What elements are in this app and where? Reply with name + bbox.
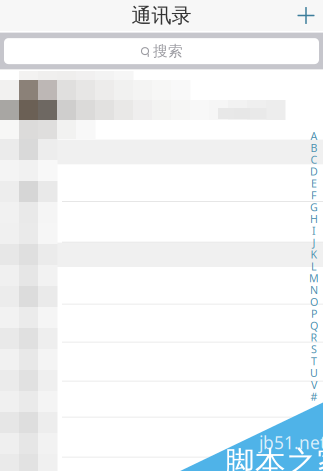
button[interactable]: Contact xyxy=(0,267,323,305)
button[interactable]: Contact xyxy=(0,418,323,458)
staticText: Q xyxy=(310,318,318,333)
staticText: 通讯录 xyxy=(131,3,191,28)
staticText: F xyxy=(311,188,317,202)
staticText: O xyxy=(310,295,318,309)
staticText: U xyxy=(310,366,318,380)
staticText: T xyxy=(311,354,317,368)
staticText: D xyxy=(310,164,318,179)
staticText: H xyxy=(310,212,318,226)
staticText: 搜索 xyxy=(153,42,183,60)
button[interactable]: Alphabet index xyxy=(308,130,320,403)
staticText: # xyxy=(310,389,317,404)
staticText: L xyxy=(311,259,317,273)
staticText: R xyxy=(310,330,317,344)
staticText: M xyxy=(309,271,319,285)
staticText: J xyxy=(312,235,315,250)
staticText: B xyxy=(310,141,317,155)
button[interactable]: Search xyxy=(0,38,323,64)
staticText: G xyxy=(310,200,318,214)
button[interactable]: Contact xyxy=(0,202,323,243)
staticText: C xyxy=(310,152,317,167)
staticText: K xyxy=(310,247,317,261)
staticText: I xyxy=(312,224,316,238)
staticText: N xyxy=(310,283,318,297)
staticText: V xyxy=(311,378,317,392)
button[interactable]: Add contact xyxy=(289,0,323,31)
button[interactable]: Contact xyxy=(0,165,323,202)
button[interactable]: Contact xyxy=(0,382,323,418)
staticText: E xyxy=(311,176,317,190)
button[interactable]: Contact xyxy=(0,343,323,382)
staticText: P xyxy=(311,307,317,321)
staticText: jb51.net xyxy=(259,431,323,454)
staticText: A xyxy=(310,129,317,143)
button[interactable]: Contact xyxy=(0,305,323,343)
staticText: S xyxy=(311,342,317,356)
staticText: 脚本之家 xyxy=(224,444,323,471)
